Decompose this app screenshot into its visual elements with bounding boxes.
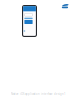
button[interactable]: Company logo <box>62 4 69 9</box>
button[interactable]: iPhone app screen preview <box>22 5 37 37</box>
staticText: Native iOS application interface design <box>11 92 64 96</box>
staticText: 1 <box>64 92 66 96</box>
